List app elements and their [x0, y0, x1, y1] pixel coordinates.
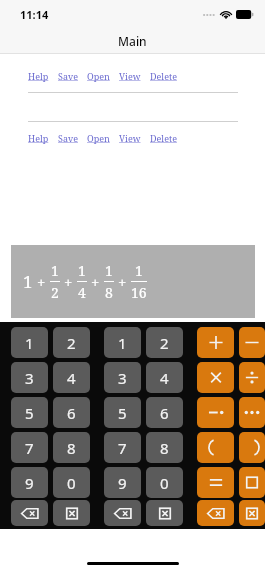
button[interactable]: Right parenthesis [239, 432, 265, 463]
button[interactable]: 2 [146, 327, 183, 358]
button[interactable]: 2 [53, 327, 90, 358]
staticText: Main [118, 33, 147, 49]
staticText: 5 [118, 403, 127, 423]
button[interactable]: 0 [53, 467, 90, 498]
button[interactable]: Open [87, 70, 119, 82]
staticText: 8 [160, 438, 169, 458]
button[interactable]: Delete [150, 132, 186, 144]
staticText: 6 [67, 403, 76, 423]
staticText: 1 [105, 261, 113, 280]
staticText: + [118, 272, 127, 292]
staticText: 2 [160, 333, 169, 353]
button[interactable]: Delete [150, 70, 186, 82]
staticText: 0 [160, 473, 169, 493]
staticText: 3 [25, 368, 34, 388]
button[interactable]: View [119, 70, 150, 82]
staticText: 4 [160, 368, 169, 388]
button[interactable]: 4 [146, 362, 183, 393]
button[interactable]: 3 [104, 362, 141, 393]
button[interactable]: Divide [239, 362, 265, 393]
button[interactable]: More [239, 397, 265, 428]
staticText: Save [58, 70, 78, 82]
staticText: 16 [131, 283, 147, 302]
button[interactable]: Save [58, 132, 87, 144]
staticText: Open [87, 70, 110, 82]
staticText: Delete [150, 132, 177, 144]
staticText: 4 [78, 283, 86, 302]
button[interactable]: 6 [53, 397, 90, 428]
button[interactable]: Backspace [11, 500, 48, 526]
staticText: 9 [25, 473, 34, 493]
staticText: 4 [67, 368, 76, 388]
button[interactable]: Backspace [104, 500, 141, 526]
button[interactable]: View [119, 132, 150, 144]
staticText: 1 [51, 261, 59, 280]
button[interactable]: Clear [146, 500, 183, 526]
button[interactable]: Clear [53, 500, 90, 526]
staticText: 1 [135, 261, 143, 280]
button[interactable]: 8 [53, 432, 90, 463]
button[interactable]: 7 [104, 432, 141, 463]
button[interactable]: Minus [239, 327, 265, 358]
button[interactable]: 5 [11, 397, 48, 428]
staticText: Delete [150, 70, 177, 82]
staticText: 8 [67, 438, 76, 458]
button[interactable]: 5 [104, 397, 141, 428]
staticText: 11:14 [20, 7, 49, 22]
button[interactable]: 6 [146, 397, 183, 428]
button[interactable]: Help [28, 70, 58, 82]
button[interactable]: 9 [104, 467, 141, 498]
button[interactable]: 7 [11, 432, 48, 463]
staticText: View [119, 70, 141, 82]
staticText: 0 [67, 473, 76, 493]
staticText: 5 [25, 403, 34, 423]
button[interactable]: Dash dot [197, 397, 234, 428]
staticText: 8 [105, 283, 113, 302]
button[interactable]: Left parenthesis [197, 432, 234, 463]
staticText: 7 [25, 438, 34, 458]
staticText: Open [87, 132, 110, 144]
staticText: 7 [118, 438, 127, 458]
staticText: 1 [78, 261, 86, 280]
staticText: + [37, 272, 46, 292]
button[interactable]: Open [87, 132, 119, 144]
staticText: 6 [160, 403, 169, 423]
staticText: 1 [23, 270, 33, 293]
staticText: + [64, 272, 73, 292]
button[interactable]: Square [239, 467, 265, 498]
staticText: View [119, 132, 141, 144]
staticText: Save [58, 132, 78, 144]
staticText: + [91, 272, 100, 292]
staticText: Help [28, 132, 49, 144]
staticText: 3 [118, 368, 127, 388]
staticText: 2 [51, 283, 59, 302]
staticText: 2 [67, 333, 76, 353]
staticText: 1 [118, 333, 127, 353]
button[interactable]: Plus [197, 327, 234, 358]
staticText: Help [28, 70, 49, 82]
button[interactable]: 4 [53, 362, 90, 393]
button[interactable]: 3 [11, 362, 48, 393]
button[interactable]: 0 [146, 467, 183, 498]
button[interactable]: Equals [197, 467, 234, 498]
staticText: 1 [25, 333, 34, 353]
button[interactable]: Help [28, 132, 58, 144]
button[interactable]: Clear [239, 500, 265, 526]
button[interactable]: Save [58, 70, 87, 82]
button[interactable]: Backspace [197, 500, 234, 526]
staticText: 9 [118, 473, 127, 493]
button[interactable]: Multiply [197, 362, 234, 393]
button[interactable]: 8 [146, 432, 183, 463]
button[interactable]: 9 [11, 467, 48, 498]
button[interactable]: 1 [104, 327, 141, 358]
button[interactable]: 1 [11, 327, 48, 358]
